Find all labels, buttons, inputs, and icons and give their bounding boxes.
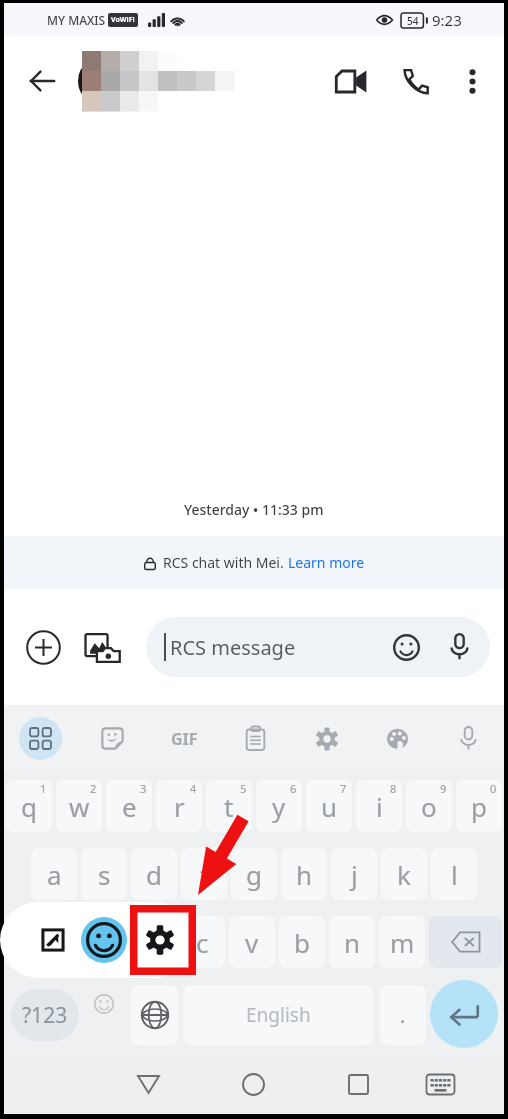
staticText: 7 — [340, 781, 347, 796]
staticText: RCS message — [170, 634, 296, 661]
staticText: 4 — [190, 781, 197, 796]
staticText: q — [21, 789, 37, 824]
button[interactable]: h — [281, 848, 327, 900]
button[interactable]: w — [56, 780, 102, 832]
button[interactable]: q — [6, 780, 52, 832]
button[interactable]: n — [329, 916, 375, 968]
button[interactable]: Change language — [131, 985, 178, 1045]
button[interactable]: y — [256, 780, 302, 832]
button[interactable]: . — [380, 985, 426, 1045]
button[interactable]: Enter — [430, 980, 498, 1048]
button[interactable]: Emoji — [84, 984, 124, 1024]
button[interactable]: x — [131, 916, 176, 968]
button[interactable]: Video call — [320, 45, 382, 117]
button[interactable]: a — [31, 848, 77, 900]
staticText: v — [245, 925, 259, 960]
button[interactable]: Shift — [6, 916, 78, 968]
button[interactable]: Apps — [4, 705, 76, 772]
staticText: o — [421, 789, 437, 824]
staticText: s — [98, 857, 111, 892]
staticText: e — [122, 789, 137, 824]
staticText: 6 — [290, 781, 297, 796]
button[interactable]: Call — [385, 45, 447, 117]
button[interactable]: ?123 — [11, 989, 79, 1041]
button[interactable]: b — [279, 916, 325, 968]
staticText: f — [200, 857, 209, 892]
staticText: . — [400, 1002, 406, 1029]
button[interactable]: RCS message — [146, 617, 490, 677]
button[interactable]: j — [331, 848, 377, 900]
button[interactable]: Back — [118, 1055, 178, 1114]
staticText: 5 — [240, 781, 247, 796]
staticText: MY MAXIS — [47, 12, 106, 28]
button[interactable]: f — [181, 848, 227, 900]
button[interactable]: Backspace — [429, 916, 502, 968]
button[interactable]: More options — [444, 45, 500, 117]
button[interactable]: e — [106, 780, 152, 832]
staticText: i — [376, 789, 383, 824]
staticText: RCS chat with Mei. — [163, 553, 288, 572]
button[interactable]: Recent apps — [328, 1055, 388, 1114]
button[interactable]: GIF — [148, 705, 220, 772]
button[interactable]: Keyboard settings — [291, 705, 362, 772]
button[interactable]: Themes — [362, 705, 433, 772]
staticText: Yesterday • 11:33 pm — [184, 500, 324, 519]
button[interactable]: Back — [12, 45, 72, 117]
button[interactable]: English — [183, 985, 373, 1045]
button[interactable]: Voice input — [433, 705, 504, 772]
staticText: r — [174, 789, 185, 824]
button[interactable]: o — [406, 780, 452, 832]
staticText: VoWiFi — [111, 15, 135, 25]
button[interactable]: Learn more — [288, 553, 365, 572]
button[interactable]: r — [156, 780, 202, 832]
button[interactable]: t — [206, 780, 252, 832]
button[interactable]: p — [456, 780, 502, 832]
staticText: b — [294, 925, 310, 960]
staticText: c — [196, 925, 209, 960]
staticText: k — [397, 857, 411, 892]
staticText: d — [146, 857, 162, 892]
button[interactable]: g — [231, 848, 277, 900]
button[interactable]: Hide keyboard — [410, 1055, 470, 1114]
button[interactable]: d — [131, 848, 177, 900]
staticText: Learn more — [288, 553, 365, 572]
staticText: 9 — [440, 781, 447, 796]
staticText: t — [224, 789, 234, 824]
staticText: z — [98, 925, 111, 960]
button[interactable]: i — [356, 780, 402, 832]
button[interactable]: l — [431, 848, 477, 900]
button[interactable]: Keyboard settings — [140, 920, 180, 960]
button[interactable]: k — [381, 848, 427, 900]
staticText: 54 — [407, 14, 419, 28]
button[interactable]: z — [82, 916, 127, 968]
staticText: g — [246, 857, 262, 892]
staticText: ?123 — [22, 1001, 68, 1030]
button[interactable]: m — [379, 916, 425, 968]
staticText: u — [321, 789, 338, 824]
staticText: x — [147, 925, 161, 960]
staticText: 2 — [90, 781, 97, 796]
staticText: y — [272, 789, 286, 824]
button[interactable]: Stickers — [76, 705, 148, 772]
button[interactable]: c — [180, 916, 225, 968]
staticText: l — [451, 857, 458, 892]
button[interactable]: s — [81, 848, 127, 900]
staticText: 9:23 — [432, 10, 462, 30]
staticText: English — [246, 1002, 311, 1028]
staticText: a — [47, 857, 62, 892]
button[interactable]: Add attachment — [17, 621, 69, 673]
button[interactable]: Shift — [34, 921, 72, 959]
button[interactable]: u — [306, 780, 352, 832]
button[interactable]: Home — [223, 1055, 283, 1114]
button[interactable]: v — [229, 916, 275, 968]
staticText: 0 — [490, 781, 497, 796]
button[interactable]: Gallery and camera — [77, 621, 129, 673]
button[interactable]: Emoji — [81, 917, 127, 963]
staticText: m — [390, 925, 415, 960]
button[interactable] — [76, 45, 316, 117]
button[interactable]: Clipboard — [220, 705, 291, 772]
staticText: n — [344, 925, 361, 960]
staticText: 1 — [40, 781, 47, 796]
staticText: 3 — [140, 781, 147, 796]
staticText: j — [351, 857, 358, 892]
